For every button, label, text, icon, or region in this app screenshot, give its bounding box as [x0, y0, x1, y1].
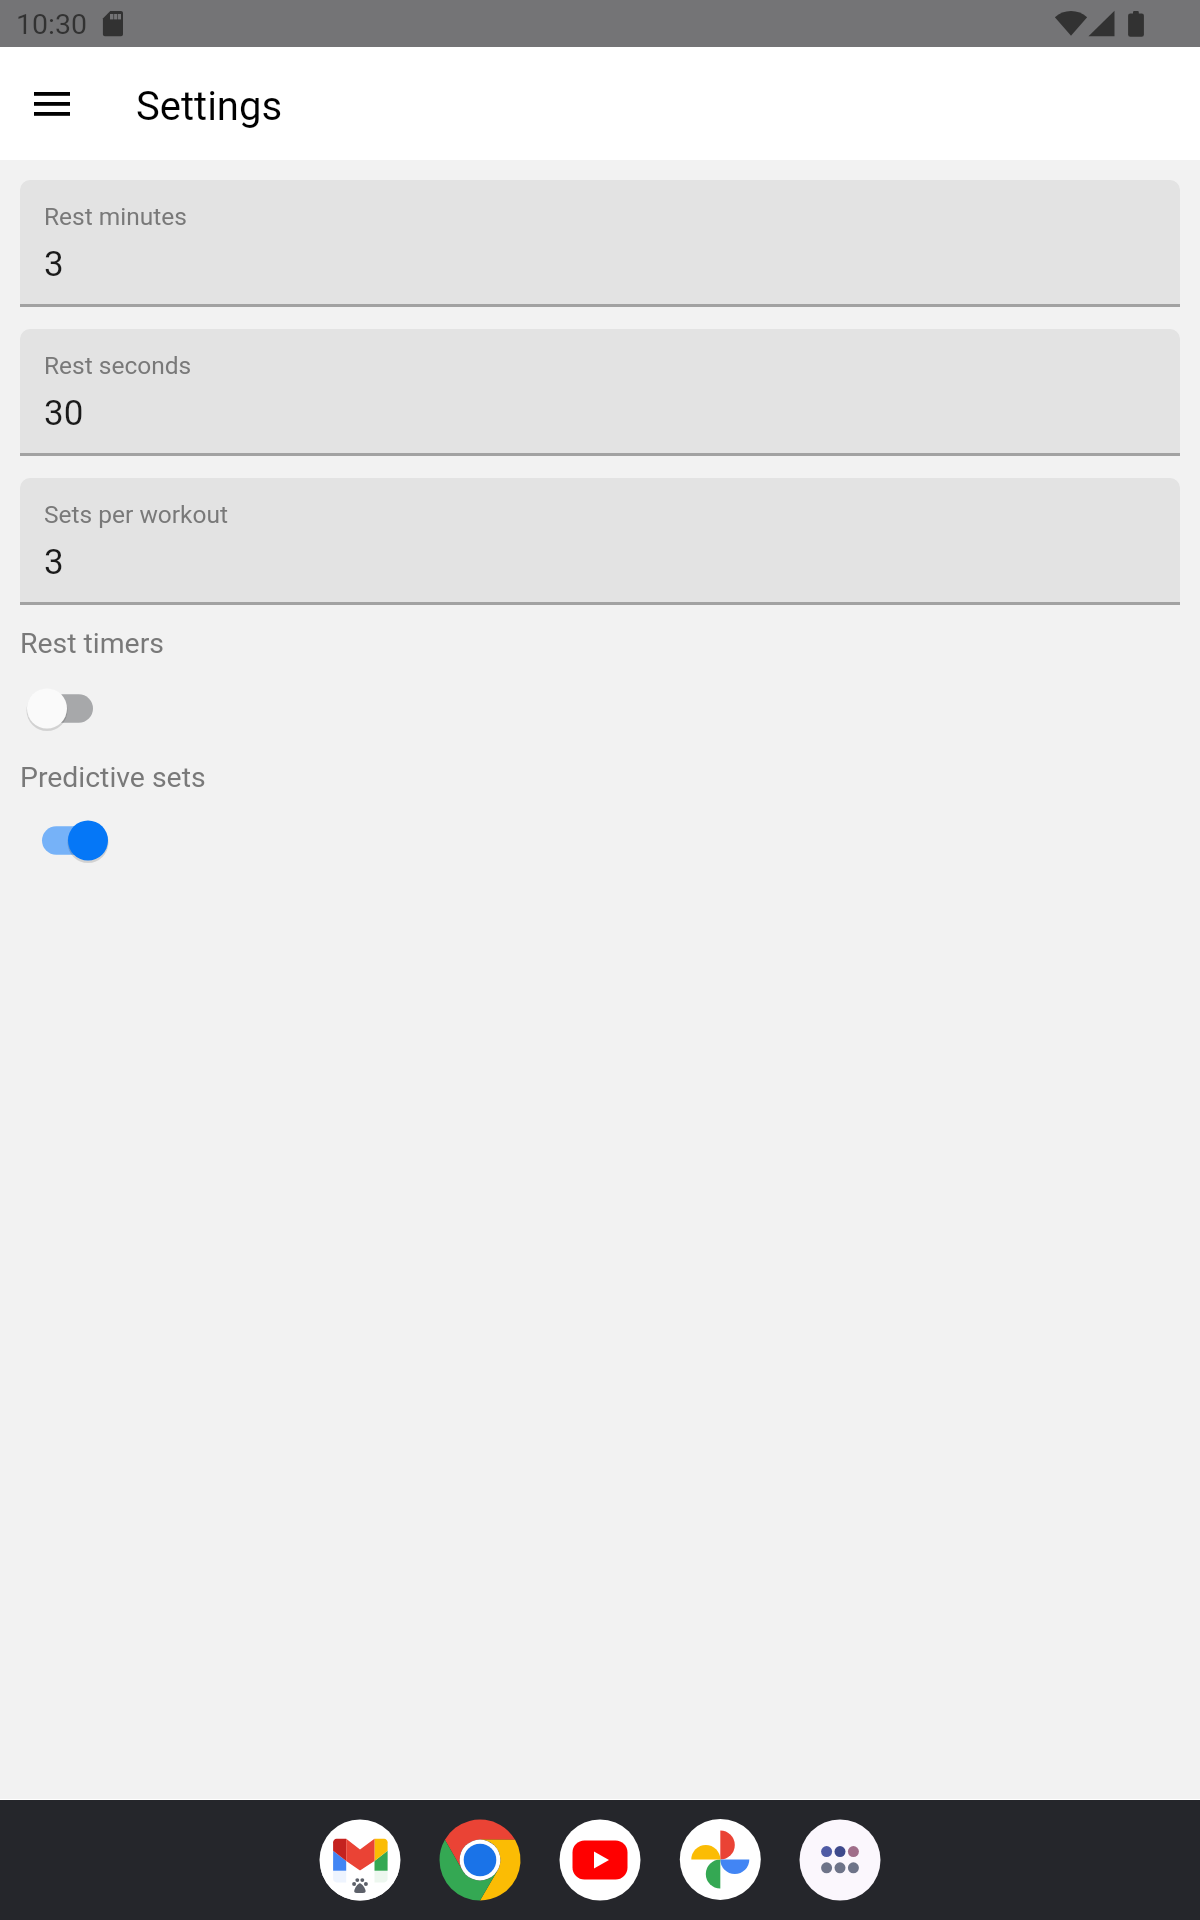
- staticText: 30: [44, 393, 84, 434]
- staticText: Settings: [136, 83, 283, 130]
- staticText: Predictive sets: [20, 761, 206, 794]
- staticText: 3: [44, 542, 64, 583]
- button[interactable]: Open navigation drawer: [10, 70, 94, 138]
- staticText: 10:30: [16, 8, 87, 41]
- staticText: Rest timers: [20, 627, 164, 660]
- button[interactable]: Photos: [680, 1820, 760, 1900]
- staticText: Rest minutes: [44, 202, 187, 231]
- staticText: Rest seconds: [44, 351, 192, 380]
- button[interactable]: All apps: [800, 1820, 880, 1900]
- staticText: 3: [44, 244, 64, 285]
- button[interactable]: Gmail: [320, 1820, 400, 1900]
- button[interactable]: Rest seconds: [20, 329, 1180, 456]
- button[interactable]: Rest timers: [16, 674, 112, 742]
- button[interactable]: Sets per workout: [20, 478, 1180, 605]
- button[interactable]: Predictive sets: [16, 806, 112, 874]
- button[interactable]: Rest minutes: [20, 180, 1180, 307]
- button[interactable]: Chrome: [440, 1820, 520, 1900]
- staticText: Sets per workout: [44, 500, 229, 529]
- button[interactable]: YouTube: [560, 1820, 640, 1900]
